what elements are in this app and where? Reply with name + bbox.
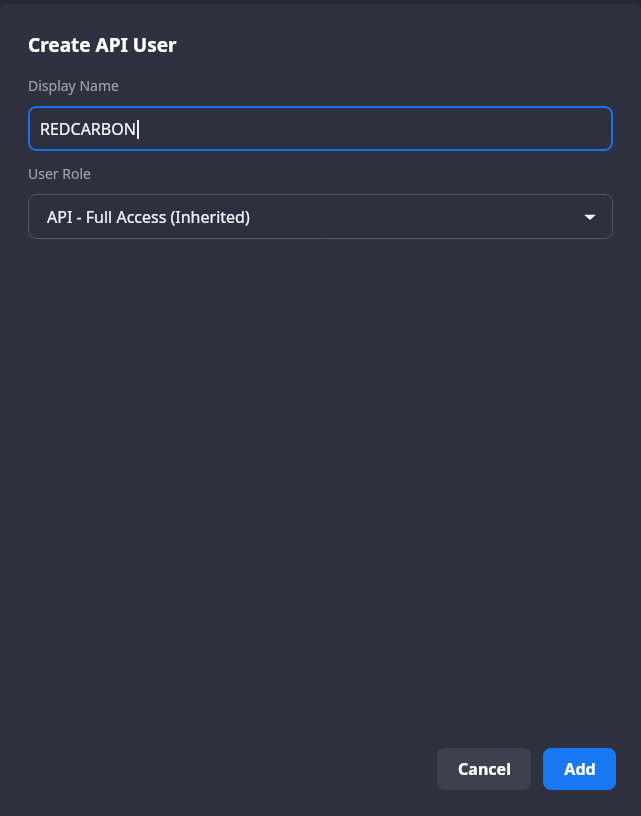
staticText: API - Full Access (Inherited) — [47, 206, 250, 228]
button[interactable]: Add — [543, 748, 616, 790]
button[interactable]: Cancel — [437, 748, 531, 790]
staticText: Add — [564, 758, 596, 780]
staticText: Display Name — [28, 76, 119, 95]
staticText: User Role — [28, 164, 91, 183]
button[interactable]: API - Full Access (Inherited) — [28, 194, 613, 239]
staticText: Create API User — [28, 32, 177, 58]
staticText: Cancel — [458, 758, 511, 780]
other: Expand role options — [583, 210, 597, 224]
staticText: REDCARBON — [40, 118, 136, 140]
button[interactable]: REDCARBON — [28, 106, 613, 151]
